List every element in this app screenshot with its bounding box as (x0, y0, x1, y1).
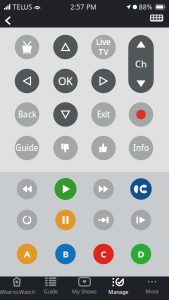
button[interactable]: D (131, 244, 151, 264)
button[interactable]: Right (91, 69, 116, 93)
button[interactable]: Back (1, 13, 15, 28)
staticText: My Shows (72, 288, 97, 295)
staticText: 88% (139, 3, 153, 11)
staticText: Ch (135, 58, 147, 70)
staticText: Exit (97, 109, 110, 120)
button[interactable]: Record (129, 102, 153, 127)
button[interactable]: A (17, 244, 37, 264)
button[interactable]: Keypad (147, 11, 166, 24)
button[interactable]: More (135, 276, 169, 300)
button[interactable]: Back (15, 102, 39, 127)
button[interactable]: Pause (55, 210, 76, 230)
staticText: B (62, 248, 68, 260)
button[interactable]: Skip to end (93, 210, 114, 230)
staticText: C (100, 248, 106, 260)
staticText: Back (18, 109, 36, 120)
staticText: Live (96, 37, 111, 47)
staticText: D (137, 248, 144, 260)
staticText: Guide (15, 143, 38, 153)
button[interactable]: B (55, 244, 76, 264)
button[interactable]: Live TV (91, 35, 116, 59)
button[interactable]: Fast forward (93, 179, 114, 199)
button[interactable]: TV (15, 35, 39, 59)
button[interactable]: Down (53, 102, 78, 127)
staticText: A (24, 248, 30, 260)
button[interactable]: Channel (128, 35, 154, 93)
button[interactable]: Exit (91, 102, 116, 127)
staticText: TV (98, 47, 108, 57)
button[interactable]: Manage (101, 276, 135, 300)
button[interactable]: Thumbs up (91, 136, 116, 160)
button[interactable]: What to Watch (0, 276, 34, 300)
staticText: Info (133, 143, 149, 153)
button[interactable]: Info (129, 136, 153, 160)
button[interactable]: Up (53, 35, 78, 59)
button[interactable]: Guide (34, 276, 68, 300)
button[interactable]: Frame advance (131, 210, 151, 230)
button[interactable]: Guide (15, 136, 39, 160)
button[interactable]: Skip ahead (130, 178, 152, 200)
button[interactable]: Thumbs down (53, 136, 78, 160)
button[interactable]: My Shows (68, 276, 101, 300)
button[interactable]: OK (53, 69, 78, 93)
button[interactable]: Rewind (17, 179, 37, 199)
button[interactable]: Play (54, 178, 76, 200)
staticText: OK (58, 74, 73, 88)
staticText: TELUS (13, 3, 33, 11)
staticText: Guide (44, 288, 58, 295)
staticText: More (146, 288, 159, 295)
staticText: 2:57 PM (70, 3, 96, 11)
button[interactable]: C (93, 244, 114, 264)
staticText: What to Watch (0, 288, 35, 296)
staticText: Manage (108, 288, 128, 295)
button[interactable]: Left (15, 69, 39, 93)
button[interactable]: Replay (17, 210, 37, 230)
